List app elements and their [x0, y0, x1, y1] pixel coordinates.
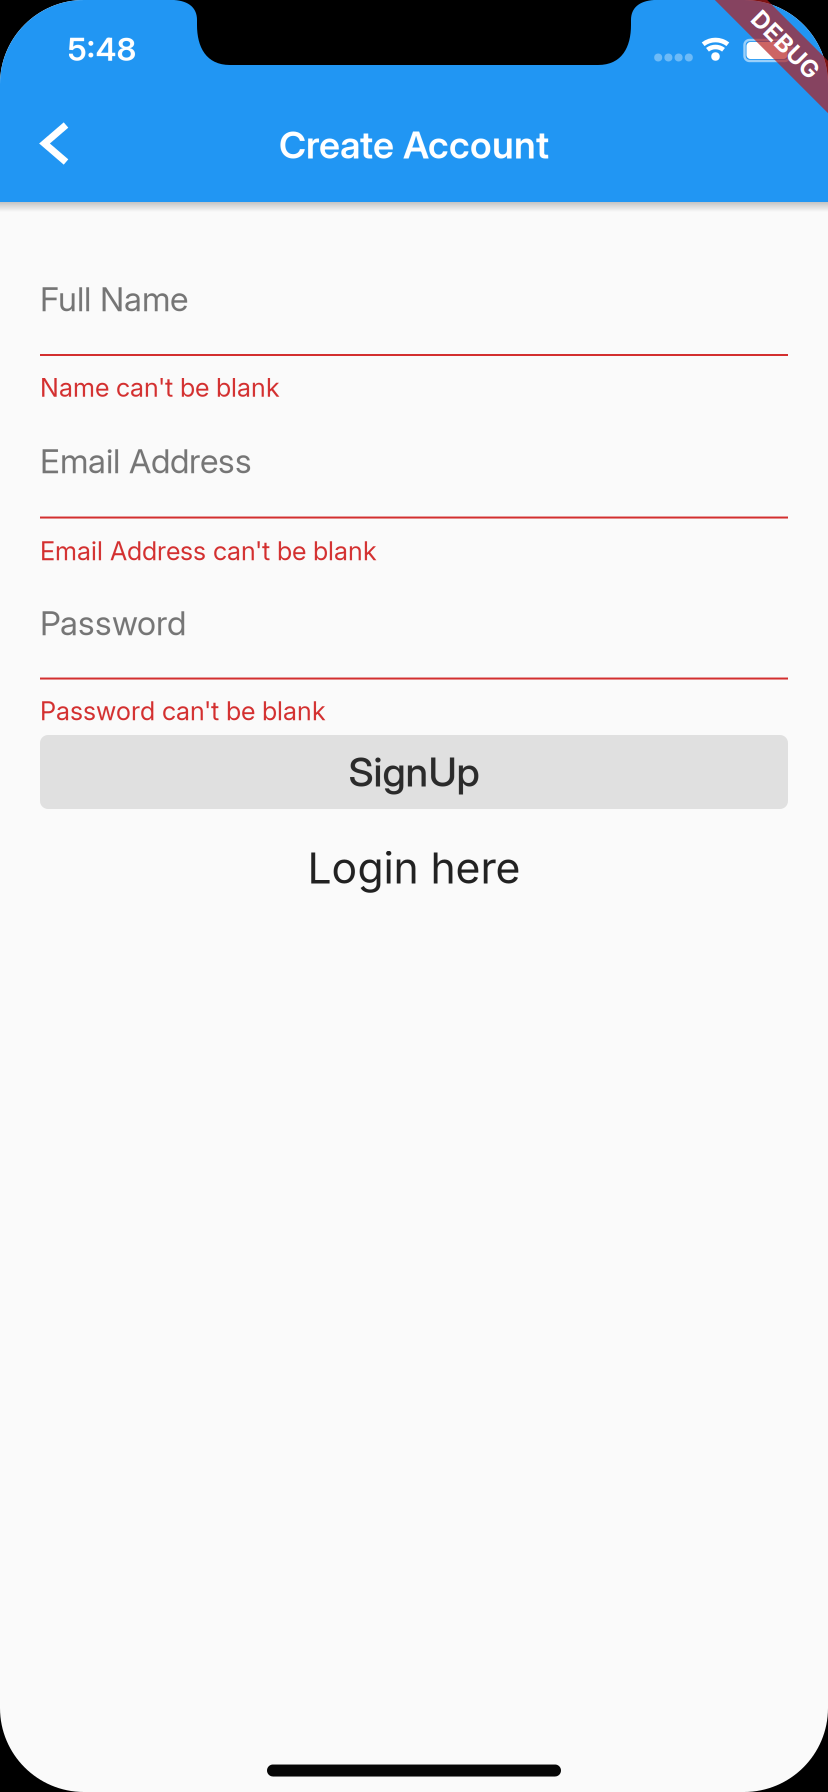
staticText: Email Address can't be blank [40, 536, 377, 566]
staticText: Login here [307, 843, 520, 893]
staticText: Password [40, 603, 186, 643]
button[interactable]: Back [36, 115, 80, 171]
button[interactable]: Full Name [0, 252, 828, 356]
button[interactable]: Login here [307, 843, 520, 893]
staticText: 5:48 [67, 30, 136, 68]
button[interactable]: Email Address [0, 414, 828, 518]
staticText: Password can't be blank [40, 696, 326, 726]
button[interactable]: SignUp [40, 735, 788, 809]
staticText: SignUp [348, 748, 479, 796]
staticText: Email Address [40, 441, 252, 481]
staticText: DEBUG [743, 30, 828, 59]
staticText: Name can't be blank [40, 373, 280, 402]
staticText: Create Account [279, 123, 549, 167]
button[interactable]: Password [0, 575, 828, 679]
staticText: Full Name [40, 279, 188, 319]
